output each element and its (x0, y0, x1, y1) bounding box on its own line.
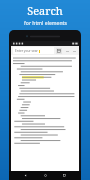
staticText: Search (27, 3, 63, 18)
button[interactable] (11, 55, 79, 171)
button[interactable]: Recent apps (61, 172, 68, 179)
button[interactable]: Back (22, 172, 29, 179)
staticText: Enter your sear (15, 49, 38, 53)
button[interactable]: Enter your sear (13, 47, 54, 54)
button[interactable]: Next result (71, 48, 77, 54)
button[interactable]: Search in page (56, 48, 62, 54)
button[interactable]: Home (42, 172, 49, 179)
staticText: for html elements (24, 20, 67, 27)
button[interactable]: Previous result (64, 48, 70, 54)
